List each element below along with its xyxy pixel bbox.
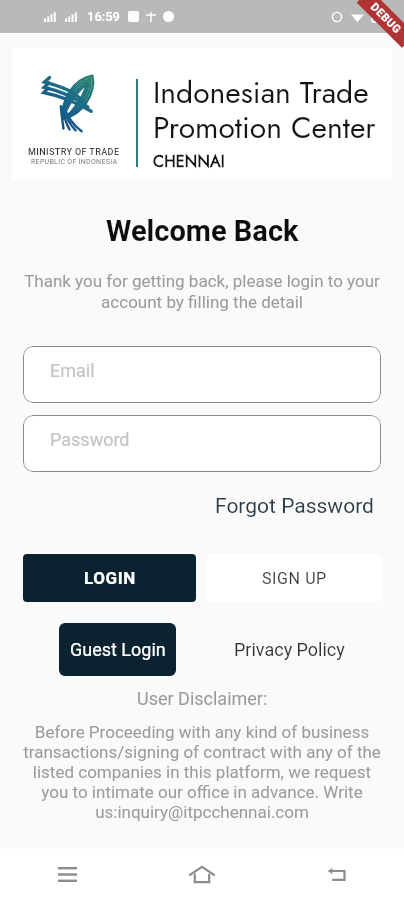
staticText: Guest Login xyxy=(70,639,166,660)
staticText: REPUBLIC OF INDONESIA xyxy=(31,158,118,166)
staticText: CHENNAI xyxy=(153,150,225,173)
staticText: User Disclaimer: xyxy=(137,688,268,709)
staticText: Indonesian Trade Promotion Center xyxy=(153,71,376,149)
staticText: Email xyxy=(50,360,95,381)
staticText: LOGIN xyxy=(84,568,136,588)
staticText: Before Proceeding with any kind of busin… xyxy=(21,722,383,822)
button[interactable]: Recent apps xyxy=(0,849,134,900)
staticText: Password xyxy=(50,429,130,450)
staticText: 16:59 xyxy=(87,9,121,24)
button[interactable]: Back xyxy=(269,849,404,900)
button[interactable]: Password xyxy=(23,415,381,472)
button[interactable]: Guest Login xyxy=(59,623,176,676)
staticText: MINISTRY OF TRADE xyxy=(28,147,120,158)
staticText: Forgot Password xyxy=(215,494,374,519)
staticText: Privacy Policy xyxy=(234,639,345,660)
button[interactable]: Home xyxy=(134,849,269,900)
button[interactable]: LOGIN xyxy=(23,554,196,602)
button[interactable]: Privacy Policy xyxy=(234,623,345,676)
button[interactable]: Email xyxy=(23,346,381,403)
button[interactable]: SIGN UP xyxy=(207,554,381,602)
button[interactable]: Forgot Password xyxy=(215,494,374,519)
staticText: DEBUG xyxy=(368,0,404,37)
staticText: Thank you for getting back, please login… xyxy=(12,271,392,312)
staticText: SIGN UP xyxy=(262,569,327,588)
staticText: Welcome Back xyxy=(106,214,299,248)
